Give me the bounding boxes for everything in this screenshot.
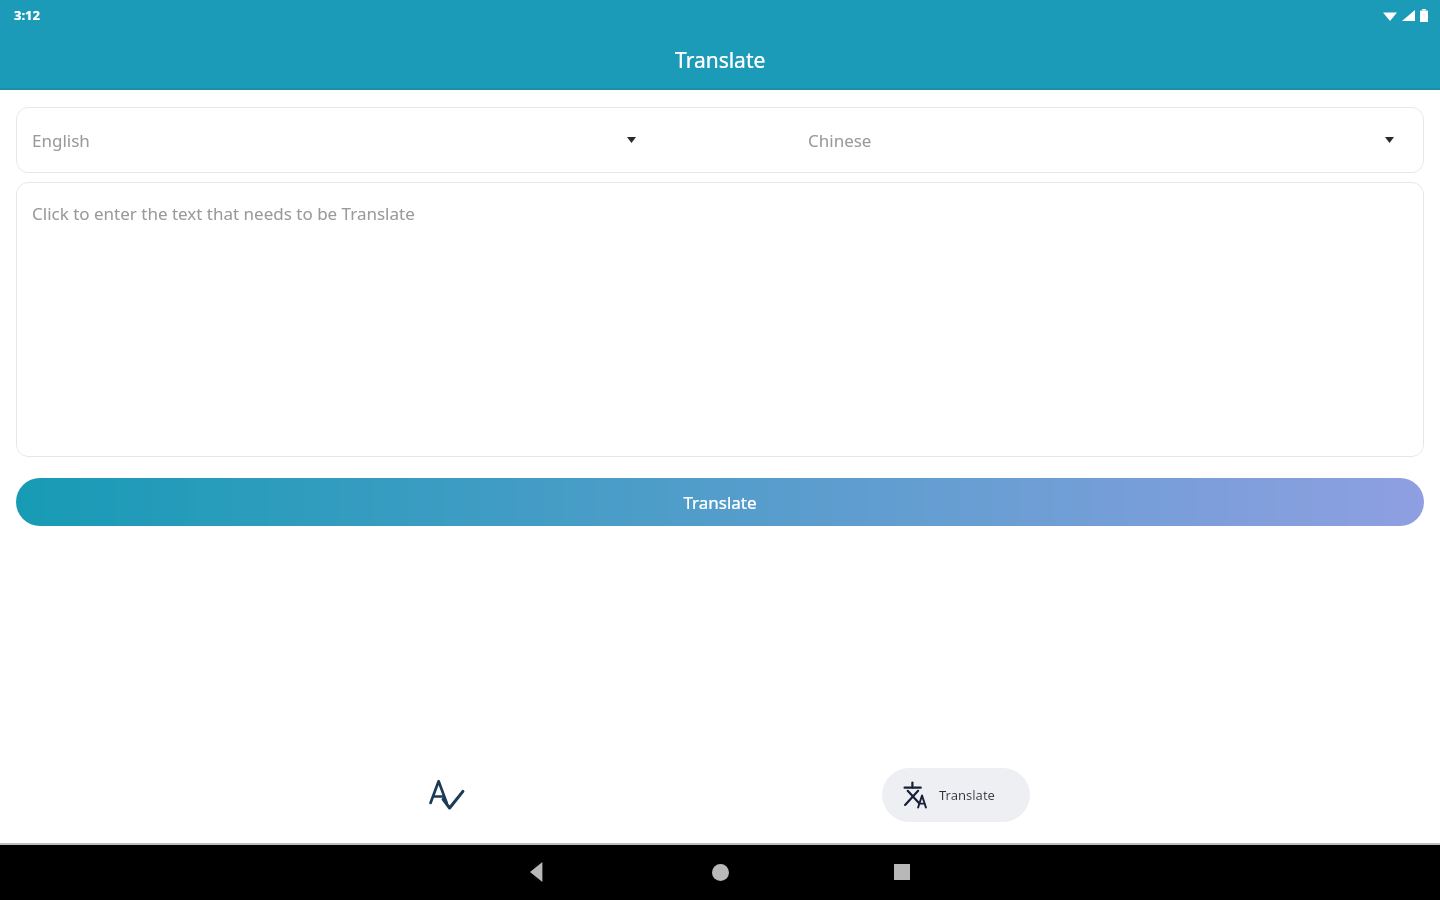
button[interactable]: Home bbox=[696, 848, 744, 896]
button[interactable]: Translate bbox=[882, 768, 1030, 822]
staticText: Translate bbox=[939, 786, 995, 804]
button[interactable]: Spell check bbox=[414, 763, 478, 827]
staticText: Translate bbox=[675, 46, 766, 75]
button[interactable]: English bbox=[16, 107, 720, 173]
staticText: Click to enter the text that needs to be… bbox=[32, 202, 415, 225]
staticText: Translate bbox=[683, 491, 757, 514]
button[interactable]: Click to enter the text that needs to be… bbox=[16, 182, 1424, 457]
button[interactable]: Back bbox=[514, 848, 562, 896]
button[interactable]: Translate bbox=[16, 478, 1424, 526]
button[interactable]: Chinese bbox=[720, 107, 1424, 173]
staticText: English bbox=[32, 129, 90, 152]
staticText: 3:12 bbox=[14, 6, 40, 24]
staticText: Chinese bbox=[808, 129, 872, 152]
button[interactable]: Recent apps bbox=[878, 848, 926, 896]
